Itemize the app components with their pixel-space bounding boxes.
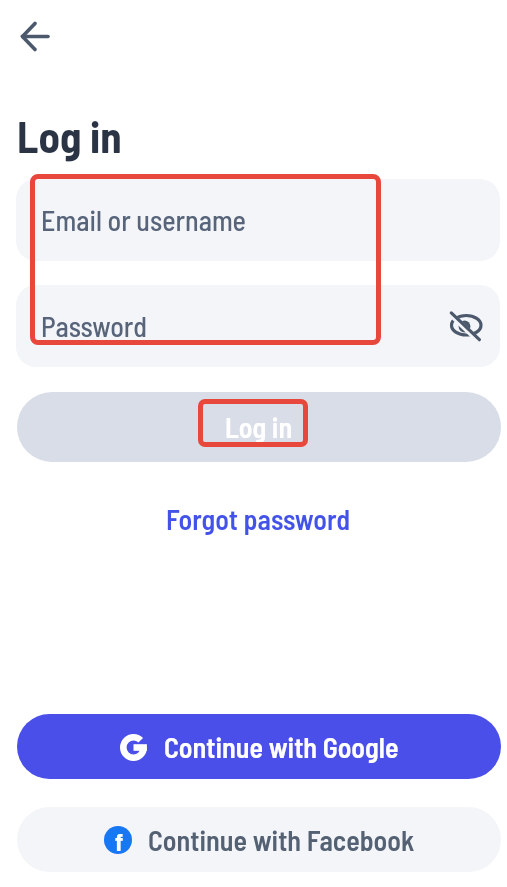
button[interactable] (12, 13, 58, 59)
button[interactable]: Forgot password (166, 502, 351, 536)
button[interactable]: Email or username (16, 179, 500, 261)
button[interactable]: Log in (17, 392, 501, 462)
staticText: Email or username (41, 203, 246, 237)
staticText: Log in (17, 110, 122, 162)
staticText: Continue with Facebook (148, 823, 415, 857)
staticText: Forgot password (166, 502, 351, 536)
button[interactable]: Password (16, 285, 500, 367)
staticText: f (115, 827, 124, 854)
button[interactable]: Continue with Google (17, 714, 501, 779)
staticText: Continue with Google (164, 730, 399, 764)
staticText: Password (41, 309, 147, 343)
button[interactable]: f (17, 807, 501, 872)
staticText: Log in (225, 410, 293, 444)
